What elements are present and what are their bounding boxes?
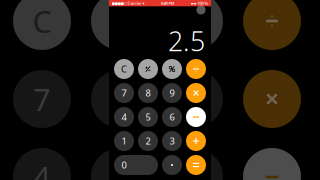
staticText: ▰▰ 100 %: [190, 0, 208, 6]
button[interactable]: 6: [162, 107, 182, 127]
button[interactable]: Divide: [186, 59, 206, 79]
button[interactable]: 9: [162, 83, 182, 103]
staticText: 0: [121, 159, 126, 171]
staticText: 5: [145, 111, 150, 123]
staticText: 7: [121, 87, 126, 99]
button[interactable]: Multiply: [186, 83, 206, 103]
button[interactable]: Equals: [186, 155, 206, 175]
staticText: 2.5: [168, 23, 205, 59]
staticText: 8:48 PM: [160, 0, 174, 6]
button[interactable]: 3: [162, 131, 182, 151]
staticText: 4: [121, 111, 126, 123]
staticText: 3: [169, 135, 174, 147]
staticText: 8: [145, 87, 150, 99]
staticText: 9: [169, 87, 174, 99]
staticText: 1: [121, 135, 126, 147]
staticText: 4: [33, 157, 51, 180]
staticText: 5: [111, 157, 129, 180]
staticText: 6: [169, 111, 174, 123]
button[interactable]: 5: [138, 107, 158, 127]
button[interactable]: 0: [114, 155, 158, 175]
staticText: 8: [111, 79, 129, 119]
staticText: 9: [185, 79, 203, 119]
staticText: 2: [145, 135, 150, 147]
button[interactable]: Percent: [162, 59, 182, 79]
staticText: 7: [33, 79, 51, 119]
staticText: C: [32, 1, 51, 41]
staticText: 6: [185, 157, 203, 180]
button[interactable]: C: [114, 59, 134, 79]
button[interactable]: 2: [138, 131, 158, 151]
button[interactable]: 4: [114, 107, 134, 127]
staticText: C: [121, 63, 127, 75]
button[interactable]: Minus: [186, 107, 206, 127]
button[interactable]: 7: [114, 83, 134, 103]
button[interactable]: 8: [138, 83, 158, 103]
staticText: ●●●●○ Carrier ▾: [111, 0, 144, 6]
button[interactable]: 1: [114, 131, 134, 151]
button[interactable]: Plus Minus: [138, 59, 158, 79]
button[interactable]: Decimal point: [162, 155, 182, 175]
button[interactable]: Plus: [186, 131, 206, 151]
